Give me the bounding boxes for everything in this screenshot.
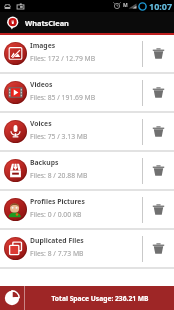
button[interactable]: Delete Backups <box>143 152 174 189</box>
staticText: Files: 75 / 3.13 MB <box>30 132 88 141</box>
staticText: Duplicated Files <box>30 236 84 245</box>
staticText: Profiles Pictures <box>30 197 85 206</box>
button[interactable]: Backups <box>0 152 174 189</box>
staticText: Backups <box>30 158 59 167</box>
button[interactable]: Delete Videos <box>143 74 174 111</box>
staticText: WhatsClean <box>25 18 69 28</box>
button[interactable]: Total Space Usage: 236.21 MB <box>25 286 174 310</box>
button[interactable]: Voices <box>0 113 174 150</box>
button[interactable]: Videos <box>0 74 174 111</box>
staticText: Files: 0 / 0.00 KB <box>30 210 82 219</box>
button[interactable]: Duplicated Files <box>0 230 174 267</box>
staticText: Videos <box>30 80 53 89</box>
staticText: Voices <box>30 119 52 128</box>
button[interactable]: Images <box>0 35 174 72</box>
button[interactable]: Profiles Pictures <box>0 191 174 228</box>
button[interactable]: Delete Duplicated Files <box>143 230 174 267</box>
staticText: M <box>123 2 128 9</box>
button[interactable]: Delete Images <box>143 35 174 72</box>
staticText: Files: 8 / 20.88 MB <box>30 171 88 180</box>
staticText: Files: 8 / 7.73 MB <box>30 249 84 258</box>
button[interactable]: Delete Voices <box>143 113 174 150</box>
staticText: Total Space Usage: 236.21 MB <box>51 294 149 303</box>
staticText: Files: 172 / 12.79 MB <box>30 54 96 63</box>
staticText: 10:07 <box>149 0 173 12</box>
staticText: Images <box>30 41 56 50</box>
button[interactable]: Delete Profiles Pictures <box>143 191 174 228</box>
staticText: Files: 85 / 191.69 MB <box>30 93 96 102</box>
button[interactable]: Statistics <box>0 286 24 310</box>
